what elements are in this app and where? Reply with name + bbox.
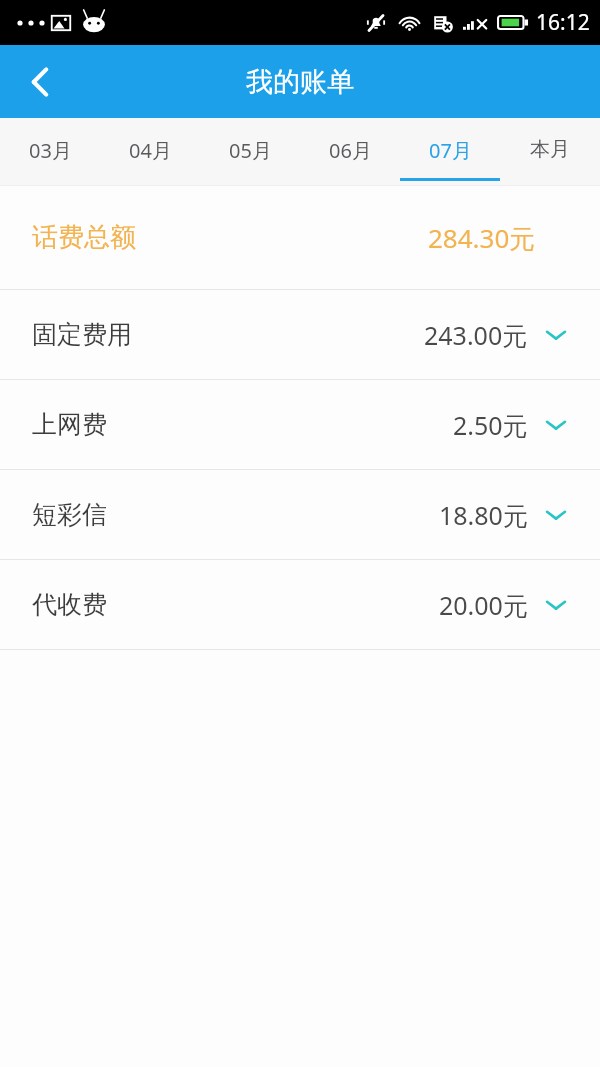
button[interactable]: 04月 xyxy=(100,118,200,186)
button[interactable]: 短彩信 xyxy=(0,470,600,559)
button[interactable]: 话费总额 xyxy=(0,186,600,289)
staticText: 固定费用 xyxy=(32,319,132,350)
staticText: 代收费 xyxy=(32,589,107,620)
button[interactable]: 05月 xyxy=(200,118,300,186)
staticText: 16:12 xyxy=(536,8,590,37)
button[interactable]: 上网费 xyxy=(0,380,600,469)
staticText: 284.30元 xyxy=(428,220,536,256)
staticText: 05月 xyxy=(229,137,272,164)
staticText: 上网费 xyxy=(32,409,107,440)
staticText: 20.00元 xyxy=(439,588,528,622)
staticText: 18.80元 xyxy=(439,498,528,532)
staticText: 03月 xyxy=(29,137,72,164)
button[interactable]: 代收费 xyxy=(0,560,600,649)
button[interactable]: 固定费用 xyxy=(0,290,600,379)
button[interactable]: Back xyxy=(0,45,80,118)
staticText: 04月 xyxy=(129,137,172,164)
staticText: 本月 xyxy=(530,137,570,162)
staticText: 2.50元 xyxy=(453,408,528,442)
staticText: 07月 xyxy=(429,137,472,164)
staticText: 我的账单 xyxy=(246,65,354,99)
button[interactable]: 03月 xyxy=(0,118,100,186)
staticText: 06月 xyxy=(329,137,372,164)
button[interactable]: 06月 xyxy=(300,118,400,186)
button[interactable]: 本月 xyxy=(500,118,600,186)
button[interactable]: 07月 xyxy=(400,118,500,186)
staticText: 话费总额 xyxy=(32,221,136,254)
staticText: 243.00元 xyxy=(424,318,528,352)
staticText: 短彩信 xyxy=(32,499,107,530)
